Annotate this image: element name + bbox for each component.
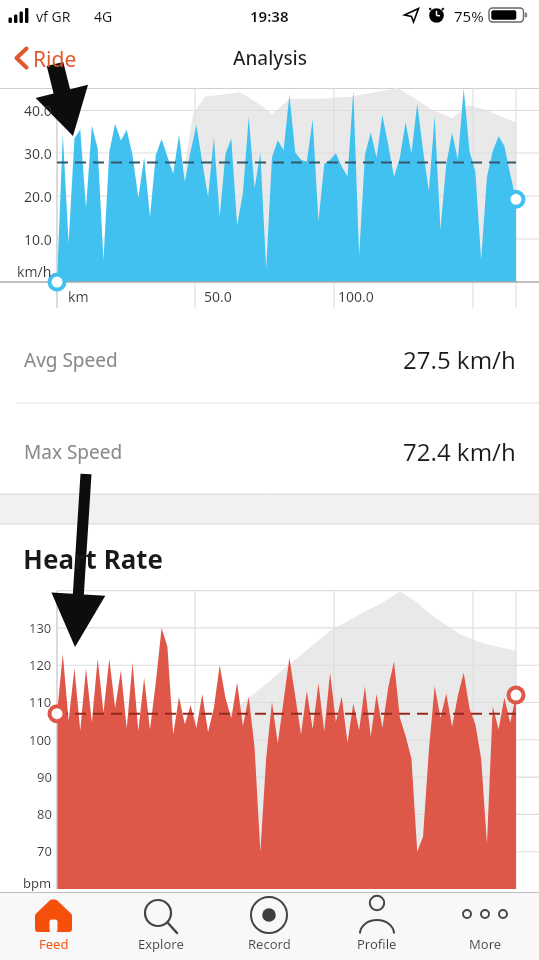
staticText: Explore — [138, 935, 184, 953]
button[interactable]: Record — [215, 892, 323, 960]
button[interactable]: Explore — [107, 892, 215, 960]
staticText: More — [469, 935, 502, 953]
staticText: Record — [248, 935, 291, 953]
button[interactable]: Ride — [8, 41, 88, 77]
staticText: bpm — [23, 874, 52, 892]
button[interactable]: Profile — [323, 892, 431, 960]
staticText: Heart Rate — [23, 541, 164, 573]
button[interactable]: More — [431, 892, 539, 960]
staticText: 90 — [37, 768, 52, 786]
staticText: Profile — [357, 935, 397, 953]
staticText: 30.0 — [24, 144, 52, 163]
staticText: 130 — [29, 619, 52, 637]
staticText: 10.0 — [24, 230, 52, 249]
staticText: 72.4 km/h — [403, 435, 516, 467]
staticText: 75% — [454, 6, 484, 26]
staticText: 110 — [29, 693, 52, 711]
staticText: 50.0 — [204, 287, 232, 306]
staticText: vf GR — [36, 7, 71, 26]
staticText: 80 — [37, 805, 52, 823]
staticText: Ride — [33, 45, 77, 74]
staticText: Feed — [39, 935, 69, 953]
staticText: 40.0 — [24, 101, 52, 120]
staticText: 120 — [29, 656, 52, 674]
staticText: Max Speed — [24, 439, 123, 465]
staticText: 20.0 — [24, 187, 52, 206]
staticText: km — [68, 287, 89, 306]
staticText: 100 — [29, 731, 52, 749]
staticText: Avg Speed — [24, 347, 118, 373]
staticText: Analysis — [233, 45, 307, 71]
staticText: 27.5 km/h — [403, 343, 516, 375]
staticText: km/h — [17, 262, 52, 281]
staticText: 100.0 — [338, 287, 374, 306]
staticText: 4G — [94, 7, 113, 26]
button[interactable]: Feed — [0, 892, 107, 960]
staticText: 70 — [37, 842, 52, 860]
staticText: 19:38 — [250, 6, 289, 26]
